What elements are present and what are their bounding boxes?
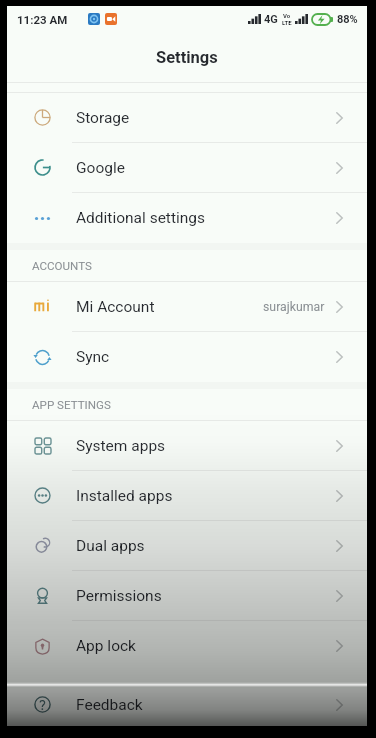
button[interactable]: Sync [7, 332, 367, 382]
staticText: APP SETTINGS [32, 398, 111, 412]
button[interactable]: Permissions [7, 571, 367, 621]
staticText: Additional settings [76, 209, 206, 227]
staticText: System apps [76, 437, 166, 455]
staticText: Settings [156, 48, 218, 67]
staticText: Google [76, 159, 125, 177]
staticText: App lock [76, 637, 136, 655]
staticText: ACCOUNTS [32, 259, 92, 273]
button[interactable]: Google [7, 143, 367, 193]
staticText: Vo [283, 12, 291, 19]
staticText: Installed apps [76, 487, 173, 505]
staticText: Dual apps [76, 537, 145, 555]
button[interactable]: Feedback [7, 683, 367, 726]
staticText: Storage [76, 109, 130, 127]
staticText: 4G [264, 13, 278, 26]
button[interactable]: App lock [7, 621, 367, 671]
button[interactable]: Mi Account [7, 282, 367, 332]
staticText: Mi Account [76, 298, 155, 316]
button[interactable]: Storage [7, 93, 367, 143]
staticText: surajkumar [263, 300, 325, 314]
staticText: Sync [76, 348, 110, 366]
button[interactable]: Dual apps [7, 521, 367, 571]
staticText: 88% [337, 13, 358, 26]
staticText: LTE [282, 19, 292, 26]
staticText: Feedback [76, 696, 143, 714]
button[interactable]: Additional settings [7, 193, 367, 243]
staticText: Permissions [76, 587, 162, 605]
staticText: 11:23 AM [17, 13, 68, 26]
button[interactable]: System apps [7, 421, 367, 471]
button[interactable]: Installed apps [7, 471, 367, 521]
